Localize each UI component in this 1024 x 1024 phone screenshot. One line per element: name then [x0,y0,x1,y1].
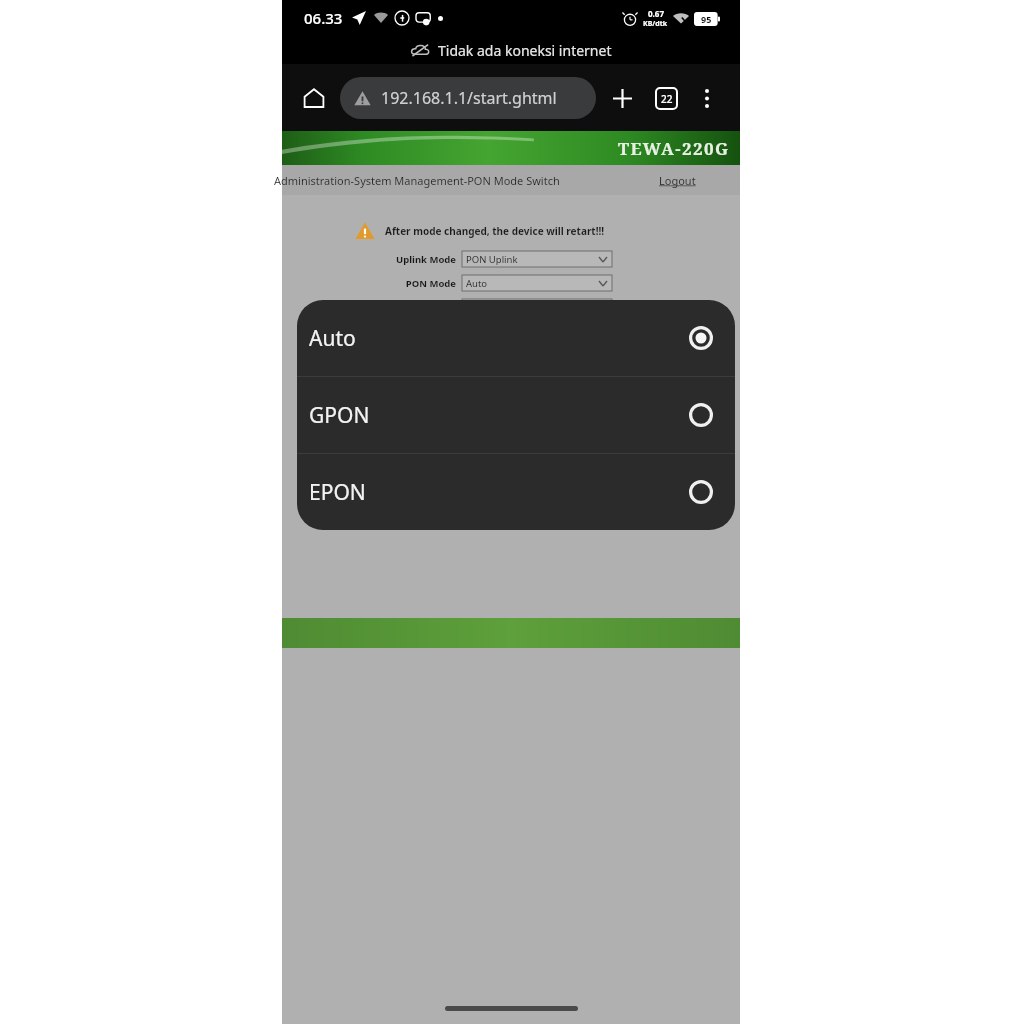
staticText: Auto [466,277,488,290]
button[interactable]: GPON [297,377,735,453]
staticText: Tidak ada koneksi internet [438,41,612,60]
button[interactable]: Auto [462,275,612,291]
staticText: GPON [309,401,370,430]
button[interactable]: EPON [297,454,735,530]
button[interactable]: Logout [659,173,696,188]
staticText: 95 [701,13,712,25]
staticText: Uplink Mode [396,253,456,266]
staticText: 0.67 [648,8,664,19]
staticText: TEWA-220G [618,137,730,160]
staticText: 192.168.1.1/start.ghtml [381,87,557,109]
staticText: KB/dtk [643,19,668,29]
staticText: After mode changed, the device will reta… [385,224,605,238]
button[interactable]: 192.168.1.1/start.ghtml [340,77,596,119]
button[interactable]: Home [296,80,332,116]
button[interactable]: Auto [297,300,735,376]
button[interactable]: ZTE Mode [462,299,612,315]
staticText: PON Mode [405,277,456,290]
button[interactable]: PON Uplink [462,251,612,267]
staticText: 22 [661,92,673,106]
staticText: 06.33 [304,8,343,28]
staticText: EPON [309,478,366,507]
staticText: Administration-System Management-PON Mod… [274,173,560,188]
button[interactable]: More options [688,79,726,117]
staticText: PON Uplink [466,253,518,266]
button[interactable]: New tab [602,78,642,118]
button[interactable]: Tabs: 22 [646,78,686,118]
staticText: Auto [309,324,356,353]
